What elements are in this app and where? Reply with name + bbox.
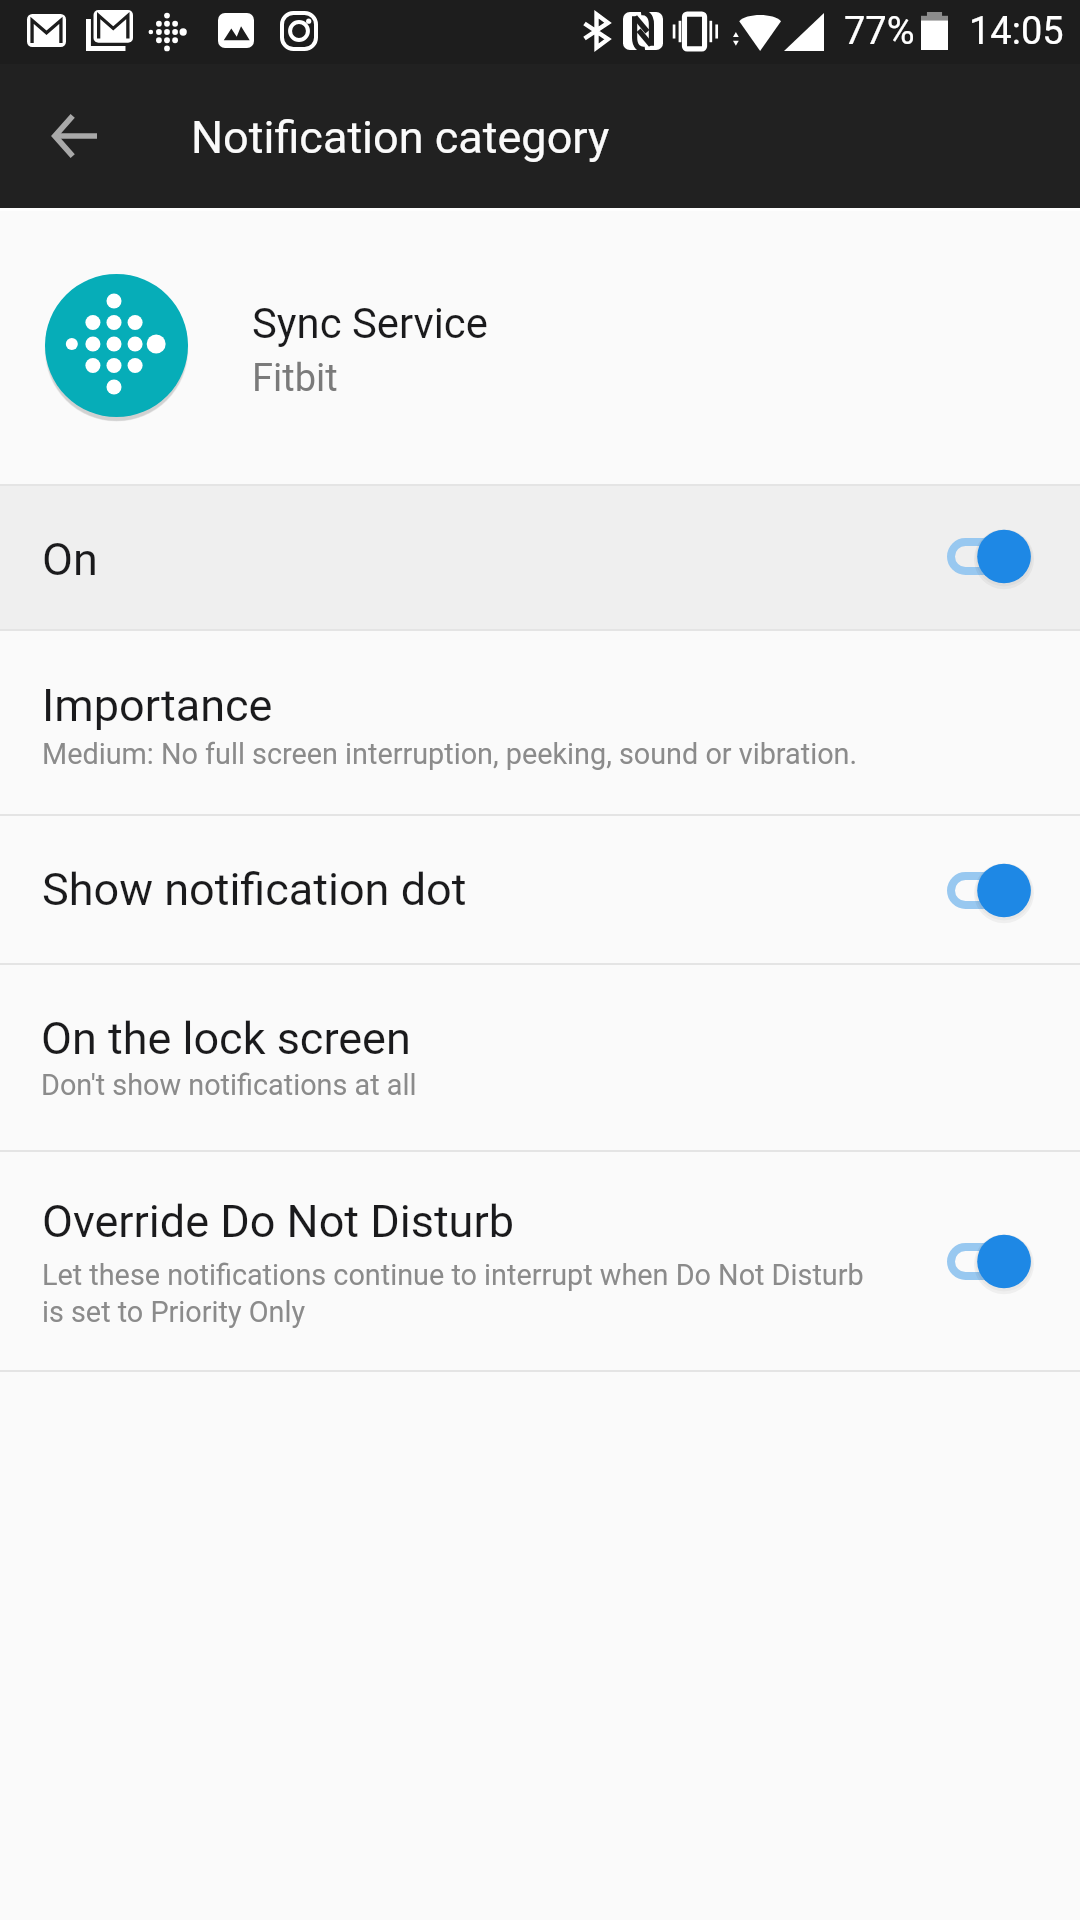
staticText: Override Do Not Disturb (42, 1195, 514, 1248)
staticText: Show notification dot (42, 863, 467, 916)
staticText: is set to Priority Only (42, 1295, 306, 1329)
button[interactable]: Sync Service, Fitbit (0, 208, 1080, 484)
button[interactable]: Navigate up (26, 88, 122, 184)
button[interactable]: On the lock screen (0, 963, 1080, 1150)
button[interactable]: Toggle switch, on (933, 850, 1045, 930)
staticText: Don't show notifications at all (41, 1068, 417, 1102)
button[interactable]: Importance (0, 629, 1080, 814)
button[interactable]: On (0, 484, 1080, 629)
staticText: Sync Service (252, 299, 488, 348)
staticText: 77% (844, 9, 915, 54)
staticText: Importance (42, 679, 273, 732)
staticText: On (42, 533, 98, 586)
button[interactable]: Show notification dot (0, 814, 1080, 963)
staticText: On the lock screen (41, 1012, 411, 1065)
staticText: Notification category (191, 111, 610, 164)
staticText: Fitbit (252, 356, 338, 401)
staticText: Medium: No full screen interruption, pee… (42, 737, 858, 771)
button[interactable]: Override Do Not Disturb (0, 1150, 1080, 1370)
button[interactable]: Toggle switch, on (933, 516, 1045, 596)
button[interactable]: Toggle switch, on (933, 1221, 1045, 1301)
staticText: 14:05 (969, 9, 1064, 54)
staticText: Let these notifications continue to inte… (42, 1258, 864, 1292)
